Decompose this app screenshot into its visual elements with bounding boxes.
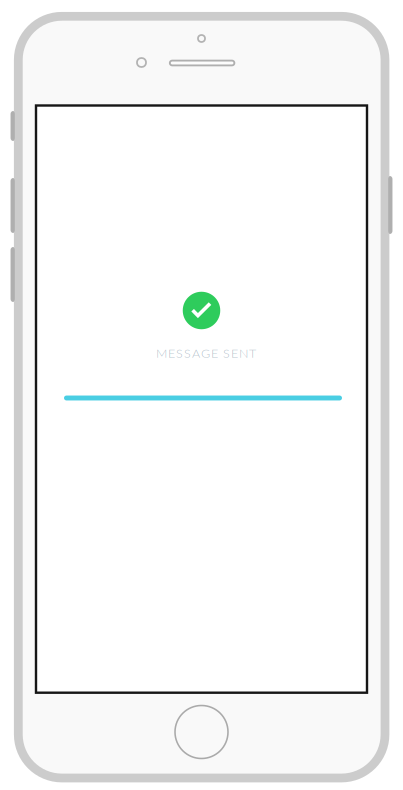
button[interactable]: Home [0, 0, 403, 790]
staticText: M E S S A G E S E N T [156, 345, 256, 360]
